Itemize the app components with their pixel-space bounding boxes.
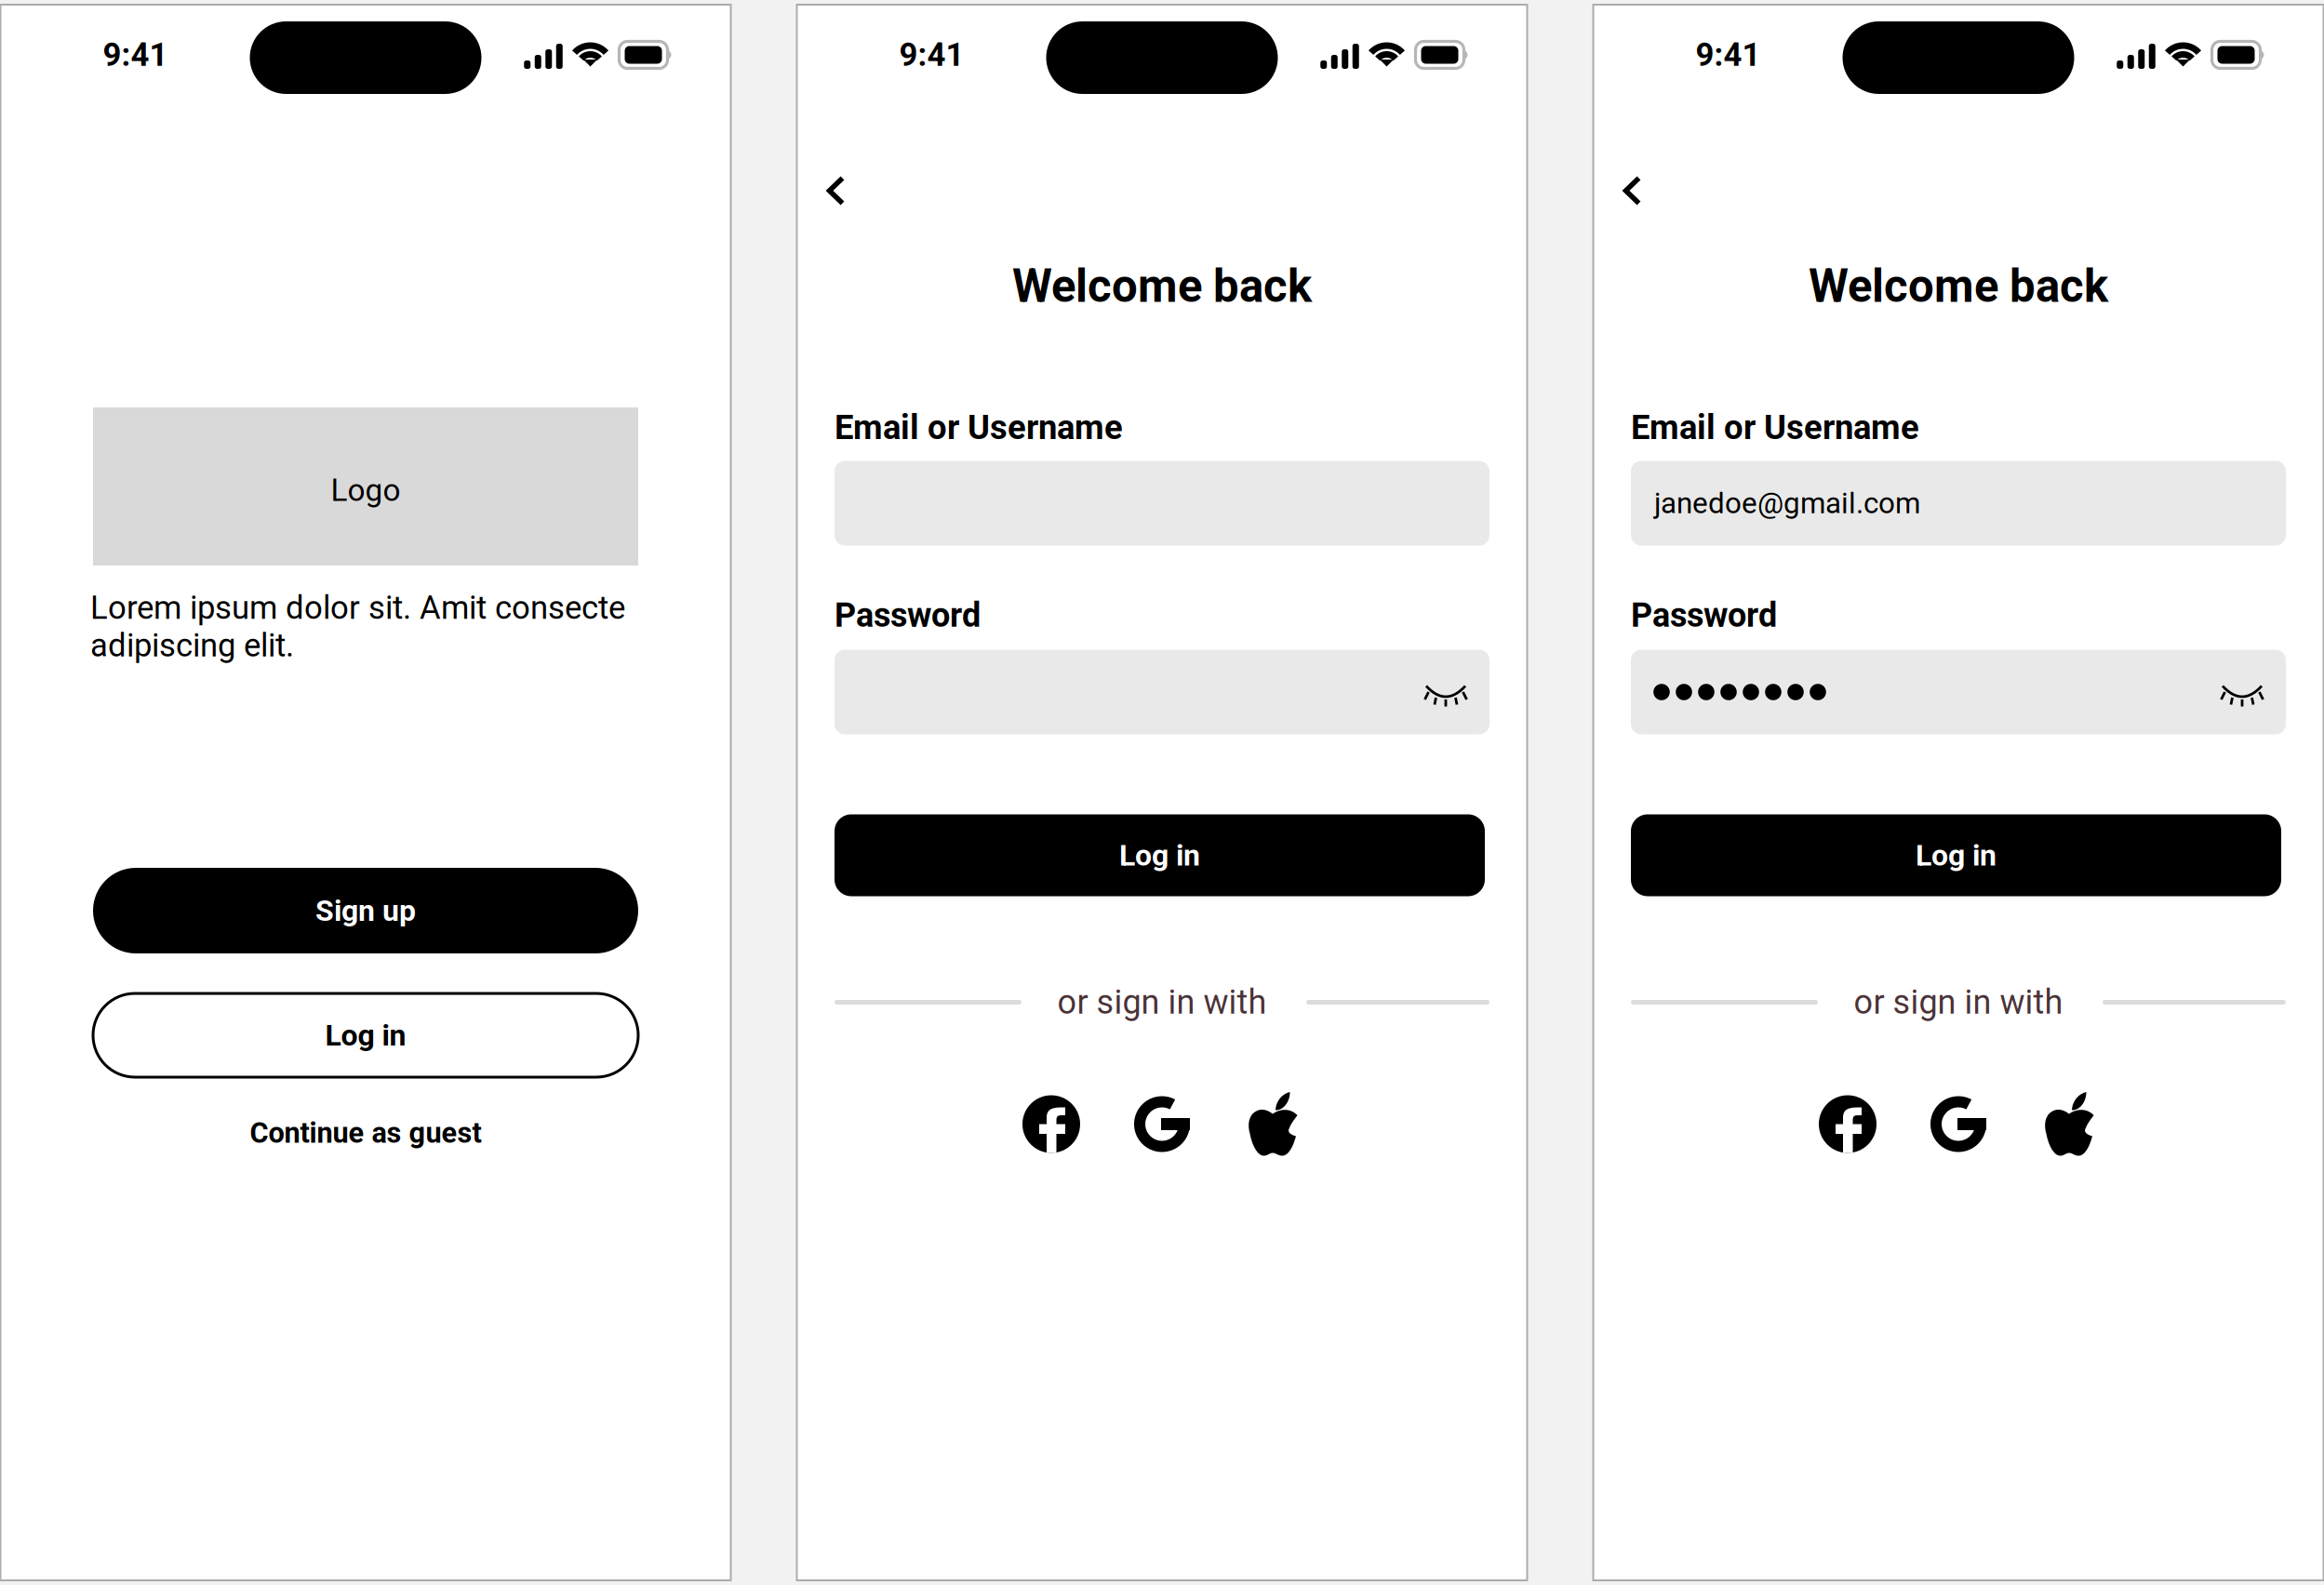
button[interactable]: Continue with Apple (2014, 1092, 2124, 1157)
staticText: or sign in with (1057, 983, 1267, 1022)
staticText: Welcome back (1809, 260, 2108, 313)
button[interactable]: Back (1610, 162, 1655, 219)
staticText: janedoe@gmail.com (1654, 486, 1920, 520)
staticText: Log in (1119, 838, 1200, 873)
button[interactable]: Log in (1631, 814, 2281, 896)
staticText: Log in (1916, 838, 1997, 873)
staticText: 9:41 (899, 36, 964, 74)
button[interactable]: Sign up (93, 868, 638, 953)
button[interactable]: Continue as guest (93, 1110, 638, 1156)
button[interactable]: Show password (1419, 676, 1469, 708)
staticText: Email or Username (835, 408, 1123, 447)
button[interactable]: Show password (2215, 676, 2265, 708)
staticText: Password (835, 596, 981, 635)
staticText: or sign in with (1854, 983, 2063, 1022)
staticText: Continue as guest (250, 1116, 481, 1150)
button[interactable]: Continue with Google (1107, 1092, 1217, 1157)
button[interactable]: Back (814, 162, 858, 219)
button[interactable]: Continue with Google (1903, 1092, 2014, 1157)
staticText: Logo (331, 472, 401, 508)
button[interactable]: Log in (93, 993, 638, 1077)
button[interactable]: Continue with Facebook (1792, 1092, 1903, 1157)
staticText: Welcome back (1012, 260, 1312, 313)
staticText: Lorem ipsum dolor sit. Amit consecte adi… (90, 589, 625, 664)
staticText: Password (1631, 596, 1777, 635)
staticText: 9:41 (103, 36, 168, 74)
button[interactable]: Continue with Apple (1217, 1092, 1328, 1157)
staticText: Sign up (315, 893, 416, 928)
button[interactable]: Continue with Facebook (996, 1092, 1107, 1157)
button[interactable]: Log in (835, 814, 1485, 896)
staticText: 9:41 (1696, 36, 1761, 74)
staticText: Log in (325, 1018, 406, 1053)
staticText: Email or Username (1631, 408, 1919, 447)
